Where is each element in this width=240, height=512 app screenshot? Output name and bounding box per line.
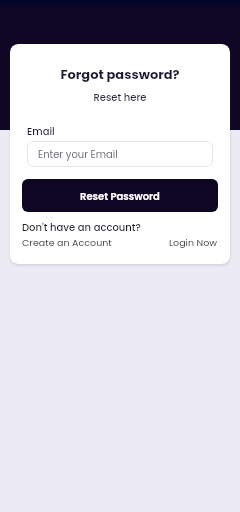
staticText: Email — [27, 124, 55, 138]
staticText: Enter your Email — [38, 147, 118, 161]
staticText: Reset here — [22, 90, 218, 104]
button[interactable]: Enter your Email — [27, 141, 213, 167]
staticText: Don't have an account? — [22, 220, 141, 234]
button[interactable]: Reset Password — [22, 179, 218, 212]
staticText: Forgot password? — [22, 65, 218, 83]
button[interactable]: Login Now — [169, 236, 218, 249]
button[interactable]: Create an Account — [22, 236, 112, 249]
staticText: Reset Password — [80, 189, 160, 203]
